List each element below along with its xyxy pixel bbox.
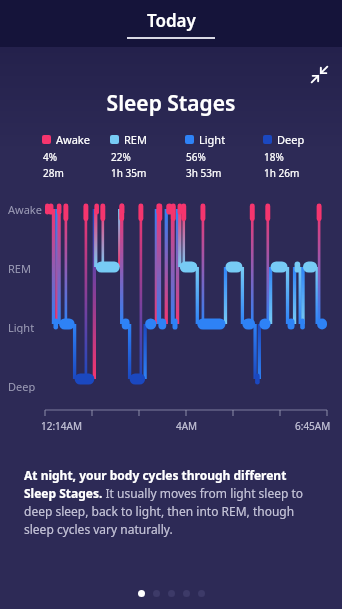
staticText: REM	[8, 261, 31, 275]
staticText: Awake	[56, 132, 90, 147]
staticText: Deep	[8, 379, 36, 393]
staticText: Light	[8, 320, 35, 334]
button[interactable]: Awake	[42, 132, 110, 180]
staticText: 12:14AM	[41, 419, 83, 433]
staticText: 1h 26m	[264, 166, 300, 180]
staticText: 22%	[111, 150, 131, 164]
button[interactable]: Collapse	[306, 61, 332, 87]
staticText: Light	[199, 132, 226, 147]
button[interactable]	[168, 590, 175, 597]
button[interactable]: Deep	[263, 132, 330, 180]
button[interactable]: Light	[185, 132, 263, 180]
staticText: Deep	[277, 132, 305, 147]
staticText: 4%	[43, 150, 58, 164]
staticText: 56%	[186, 150, 206, 164]
staticText: 4AM	[176, 419, 198, 433]
staticText: At night, your body cycles through diffe…	[24, 467, 318, 538]
button[interactable]	[153, 590, 160, 597]
button[interactable]: Today	[127, 9, 215, 39]
staticText: REM	[124, 132, 147, 147]
button[interactable]	[198, 590, 205, 597]
staticText: 18%	[264, 150, 284, 164]
button[interactable]: REM	[110, 132, 185, 180]
button[interactable]	[138, 590, 145, 597]
staticText: 3h 53m	[186, 166, 222, 180]
staticText: 6:45AM	[295, 419, 331, 433]
staticText: 28m	[43, 166, 64, 180]
button[interactable]	[183, 590, 190, 597]
staticText: 1h 35m	[111, 166, 147, 180]
staticText: Awake	[8, 202, 42, 216]
staticText: Sleep Stages	[0, 89, 342, 118]
staticText: Today	[147, 9, 196, 32]
